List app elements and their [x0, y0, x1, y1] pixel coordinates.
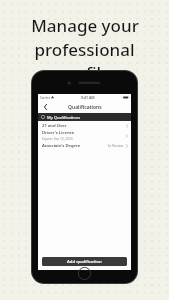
- button[interactable]: Back: [40, 102, 50, 112]
- staticText: Qualifications: [68, 104, 102, 111]
- staticText: professional profile: [8, 38, 161, 84]
- staticText: Expires Sep 14, 2023: [42, 137, 73, 141]
- staticText: Carrier: [40, 96, 50, 100]
- staticText: 9:41 AM: [81, 95, 95, 100]
- staticText: My Qualifications: [47, 115, 81, 120]
- button[interactable]: Associate's Degree: [38, 141, 131, 150]
- staticText: Manage your: [31, 14, 139, 37]
- button[interactable]: Add qualification: [42, 257, 127, 266]
- staticText: Add qualification: [67, 259, 102, 265]
- staticText: Associate's Degree: [42, 143, 81, 149]
- button[interactable]: Driver's License: [38, 130, 131, 141]
- staticText: Driver's License: [42, 130, 75, 136]
- staticText: 21 and Over: [42, 123, 67, 129]
- button[interactable]: 21 and Over: [38, 121, 131, 130]
- staticText: In Review: [108, 143, 124, 148]
